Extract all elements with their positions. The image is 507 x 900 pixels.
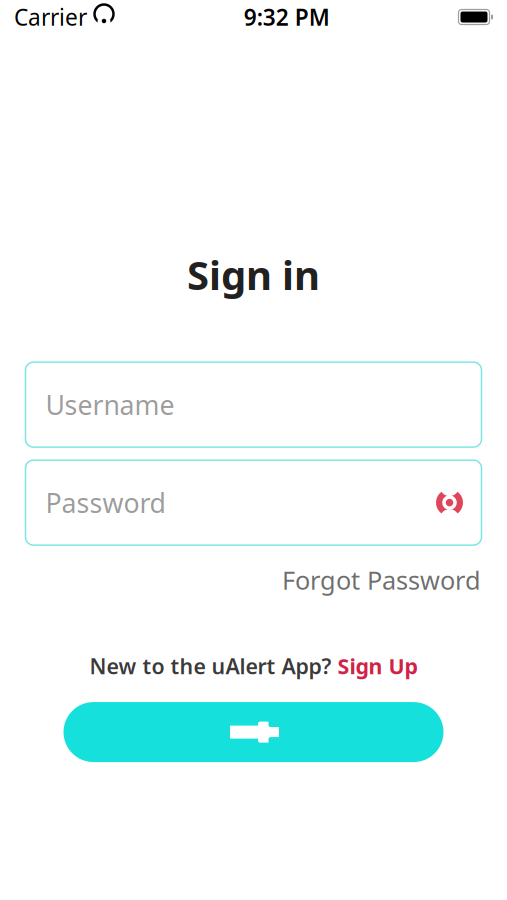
staticText: Username <box>45 387 174 422</box>
staticText: Forgot Password <box>282 563 481 597</box>
staticText: Password <box>45 485 165 520</box>
staticText: New to the uAlert App? <box>89 652 331 680</box>
staticText: Sign in <box>187 248 320 301</box>
button[interactable]: Forgot Password <box>282 563 481 597</box>
button[interactable]: Show password <box>429 483 469 523</box>
button[interactable]: Sign in <box>63 702 443 762</box>
staticText: Carrier <box>14 2 87 32</box>
button[interactable]: Sign Up <box>337 652 417 680</box>
staticText: Sign Up <box>337 652 417 680</box>
staticText: 9:32 PM <box>244 2 330 32</box>
